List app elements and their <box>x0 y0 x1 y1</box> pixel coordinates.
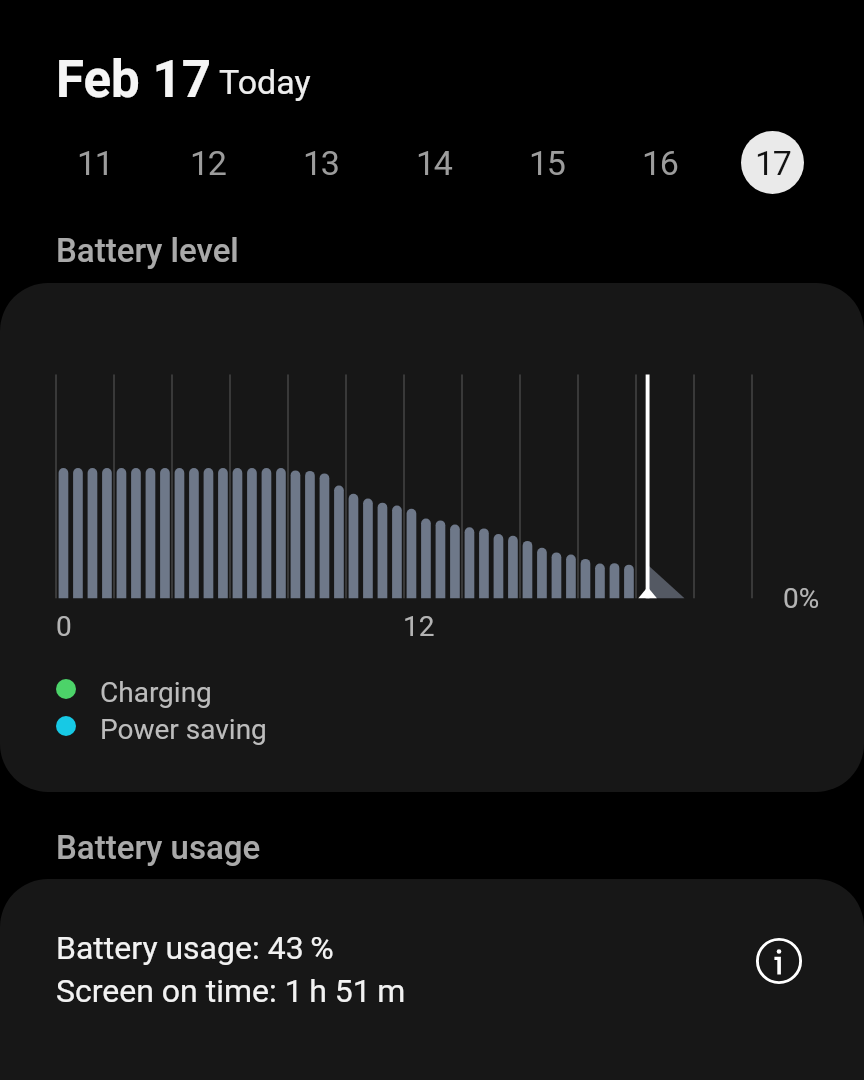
button[interactable]: 17 <box>741 131 804 194</box>
button[interactable]: 11 <box>63 131 126 194</box>
button[interactable]: 16 <box>628 131 691 194</box>
staticText: Feb 17 <box>56 50 211 110</box>
button[interactable]: 15 <box>515 131 578 194</box>
staticText: 14 <box>416 143 452 183</box>
staticText: 12 <box>190 143 226 183</box>
staticText: 13 <box>303 143 339 183</box>
button[interactable]: 12 <box>176 131 239 194</box>
staticText: 12 <box>403 610 435 643</box>
staticText: 15 <box>529 143 565 183</box>
staticText: 17 <box>755 143 791 183</box>
staticText: Today <box>219 62 311 102</box>
staticText: Screen on time: 1 h 51 m <box>56 972 406 1010</box>
button[interactable]: 13 <box>289 131 352 194</box>
button[interactable]: Battery usage: 43 % <box>0 879 864 1080</box>
button[interactable] <box>56 679 76 699</box>
staticText: Battery usage: 43 % <box>56 929 334 967</box>
staticText: Battery usage <box>56 828 261 867</box>
button[interactable]: 14 <box>402 131 465 194</box>
staticText: 0 <box>56 610 72 643</box>
staticText: 11 <box>77 143 113 183</box>
staticText: 0% <box>783 582 820 615</box>
staticText: Power saving <box>100 713 267 746</box>
staticText: Battery level <box>56 231 239 270</box>
button[interactable]: More information <box>750 932 808 990</box>
button[interactable] <box>56 716 76 736</box>
staticText: Charging <box>100 676 212 709</box>
staticText: 16 <box>642 143 678 183</box>
